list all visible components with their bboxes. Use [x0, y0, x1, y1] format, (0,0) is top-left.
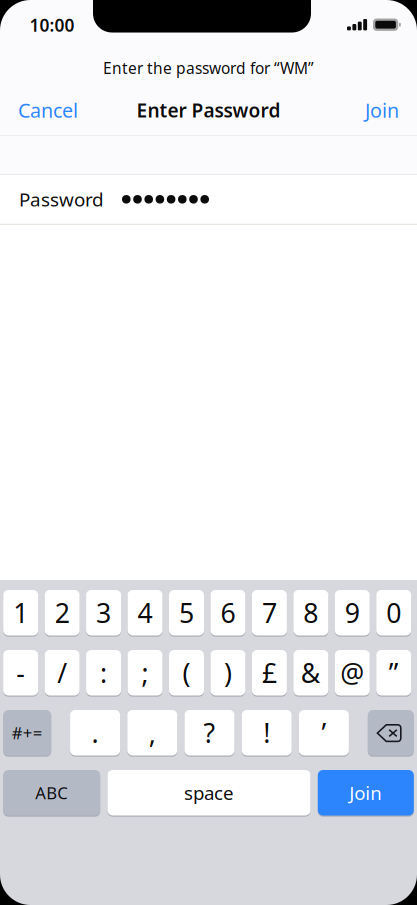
staticText: 7: [262, 595, 277, 631]
staticText: Join: [349, 780, 382, 805]
button[interactable]: £: [252, 650, 287, 697]
button[interactable]: @: [335, 650, 370, 697]
button[interactable]: 0: [376, 590, 411, 637]
staticText: Cancel: [18, 97, 78, 123]
staticText: ”: [389, 655, 399, 691]
staticText: £: [262, 655, 277, 691]
button[interactable]: 1: [3, 590, 38, 637]
button[interactable]: 9: [335, 590, 370, 637]
button[interactable]: ): [210, 650, 245, 697]
staticText: 3: [96, 595, 111, 631]
button[interactable]: &: [293, 650, 328, 697]
button[interactable]: (: [169, 650, 204, 697]
button[interactable]: -: [3, 650, 38, 697]
button[interactable]: Cancel: [18, 95, 78, 125]
staticText: :: [100, 655, 107, 691]
button[interactable]: 5: [169, 590, 204, 637]
button[interactable]: #+=: [3, 710, 51, 757]
staticText: 4: [138, 595, 153, 631]
staticText: !: [263, 715, 270, 751]
staticText: -: [16, 655, 25, 691]
staticText: #+=: [12, 721, 43, 744]
staticText: ?: [203, 715, 215, 751]
button[interactable]: Delete: [368, 710, 414, 757]
staticText: ): [224, 655, 232, 691]
button[interactable]: 4: [128, 590, 163, 637]
staticText: space: [184, 780, 234, 805]
staticText: ;: [142, 655, 149, 691]
button[interactable]: ,: [127, 710, 177, 757]
staticText: ’: [321, 715, 326, 751]
staticText: 5: [179, 595, 194, 631]
button[interactable]: 3: [86, 590, 121, 637]
staticText: Join: [365, 97, 399, 123]
button[interactable]: 6: [210, 590, 245, 637]
button[interactable]: :: [86, 650, 121, 697]
button[interactable]: Join: [365, 95, 399, 125]
button[interactable]: !: [242, 710, 292, 757]
button[interactable]: 7: [252, 590, 287, 637]
staticText: 0: [386, 595, 401, 631]
staticText: Enter Password: [136, 97, 280, 123]
staticText: 2: [55, 595, 70, 631]
staticText: Password: [19, 186, 104, 212]
staticText: 1: [13, 595, 28, 631]
button[interactable]: 8: [293, 590, 328, 637]
staticText: 8: [303, 595, 318, 631]
button[interactable]: Password: [0, 175, 417, 224]
staticText: .: [92, 715, 99, 751]
button[interactable]: /: [45, 650, 80, 697]
staticText: ,: [149, 715, 156, 751]
staticText: /: [57, 655, 67, 691]
button[interactable]: ?: [184, 710, 234, 757]
staticText: @: [340, 655, 364, 691]
button[interactable]: ;: [128, 650, 163, 697]
button[interactable]: .: [70, 710, 120, 757]
staticText: (: [182, 655, 190, 691]
button[interactable]: Join: [318, 770, 414, 817]
button[interactable]: ”: [376, 650, 411, 697]
staticText: 10:00: [29, 13, 74, 37]
staticText: 6: [220, 595, 235, 631]
button[interactable]: 2: [45, 590, 80, 637]
button[interactable]: ’: [299, 710, 349, 757]
staticText: Enter the password for “WM”: [103, 57, 314, 79]
button[interactable]: ABC: [3, 770, 100, 817]
button[interactable]: space: [107, 770, 310, 817]
staticText: 9: [345, 595, 360, 631]
staticText: &: [301, 655, 321, 691]
staticText: ABC: [35, 781, 68, 804]
